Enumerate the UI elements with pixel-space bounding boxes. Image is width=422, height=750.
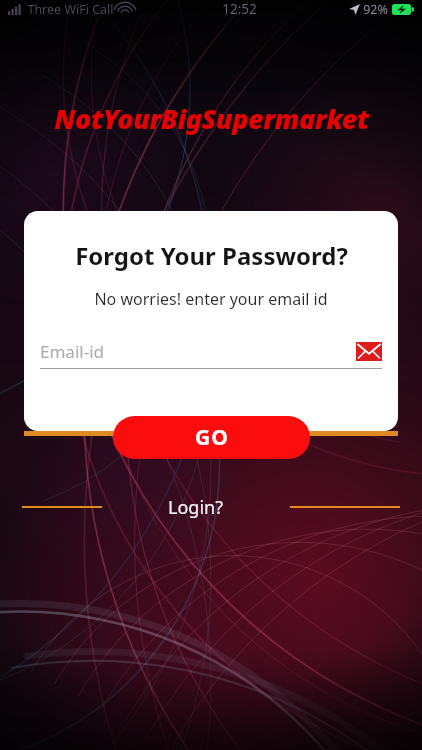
staticText: 12:52 <box>222 0 257 18</box>
button[interactable]: Email-id <box>40 334 382 368</box>
staticText: Three WiFi Call <box>27 1 114 18</box>
staticText: Login? <box>168 495 223 519</box>
staticText: No worries! enter your email id <box>94 288 328 310</box>
other: Email <box>356 342 382 361</box>
staticText: NotYourBigSupermarket <box>54 100 369 137</box>
staticText: 92% <box>363 1 388 18</box>
button[interactable]: Login? <box>158 491 233 523</box>
button[interactable]: GO <box>113 416 310 459</box>
staticText: Forgot Your Password? <box>75 239 348 272</box>
staticText: GO <box>195 423 229 452</box>
staticText: Email-id <box>40 340 104 363</box>
